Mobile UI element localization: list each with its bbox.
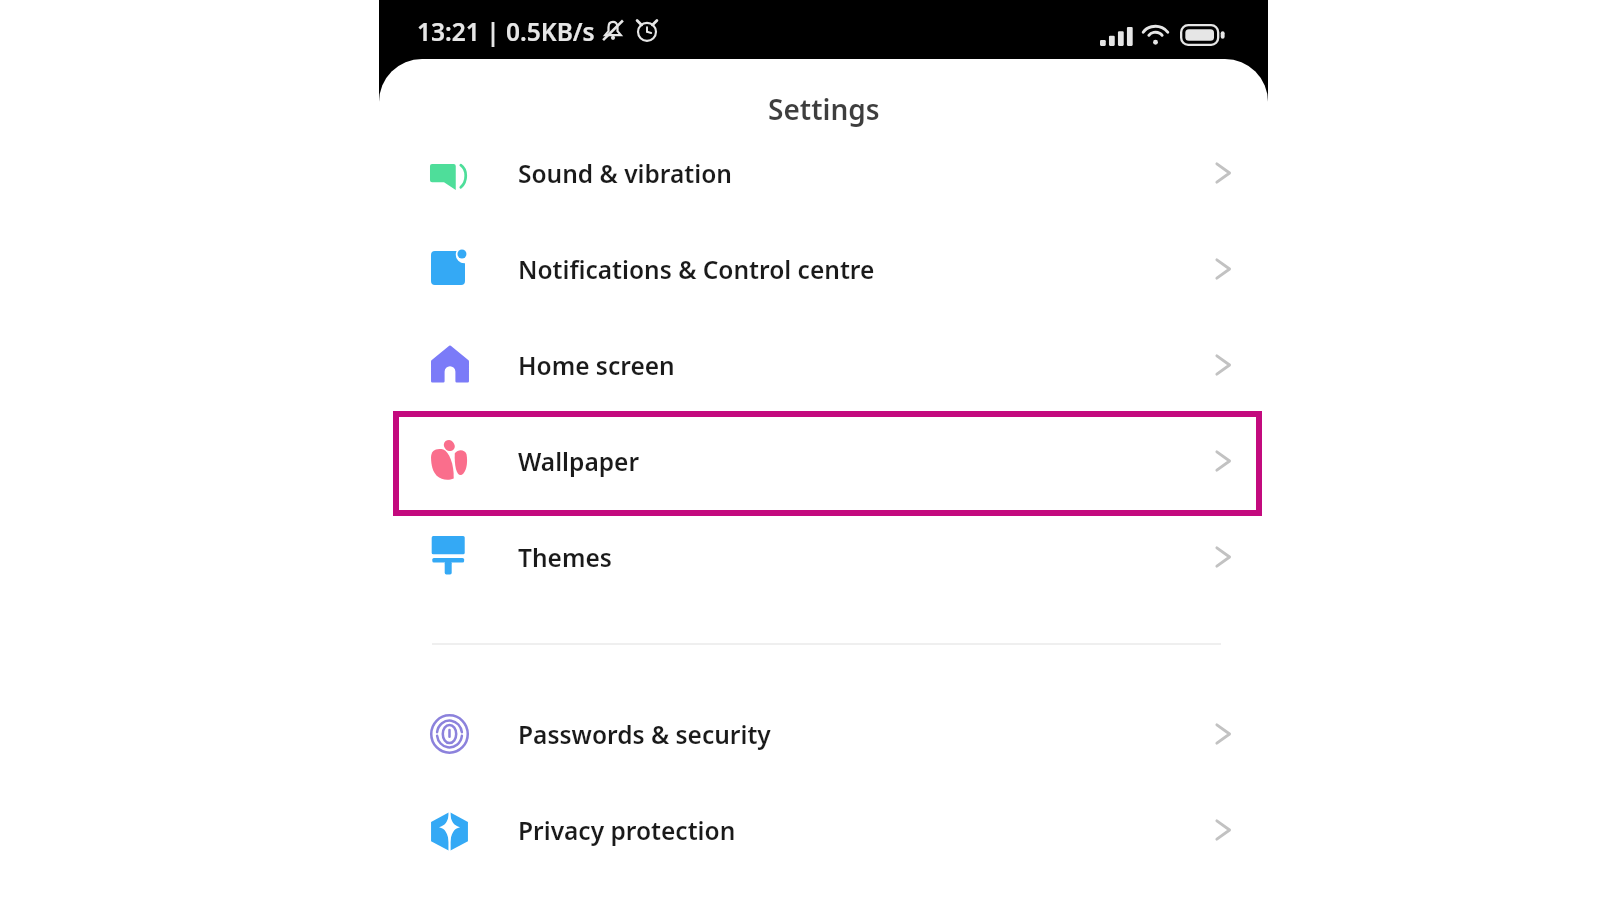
other: Mobile signal <box>1100 25 1133 46</box>
button[interactable]: Passwords & security <box>379 686 1268 782</box>
button[interactable]: Wallpaper <box>379 413 1268 509</box>
staticText: 13:21 | 0.5KB/s <box>417 15 595 48</box>
button[interactable]: Sound & vibration <box>379 125 1268 221</box>
staticText: Passwords & security <box>518 718 771 751</box>
other: Wi-Fi <box>1141 23 1170 46</box>
button[interactable]: Privacy protection <box>379 782 1268 878</box>
button[interactable]: Home screen <box>379 317 1268 413</box>
staticText: Themes <box>518 541 612 574</box>
staticText: Privacy protection <box>518 814 736 847</box>
button[interactable]: Notifications & Control centre <box>379 221 1268 317</box>
staticText: Sound & vibration <box>518 157 732 190</box>
staticText: Notifications & Control centre <box>518 253 875 286</box>
staticText: Settings <box>768 90 880 128</box>
staticText: Wallpaper <box>518 445 640 478</box>
other: Silent mode on <box>598 16 628 44</box>
other: Battery <box>1180 24 1226 46</box>
button[interactable]: Themes <box>379 509 1268 605</box>
staticText: Home screen <box>518 349 675 382</box>
other: Alarm set <box>632 15 662 45</box>
